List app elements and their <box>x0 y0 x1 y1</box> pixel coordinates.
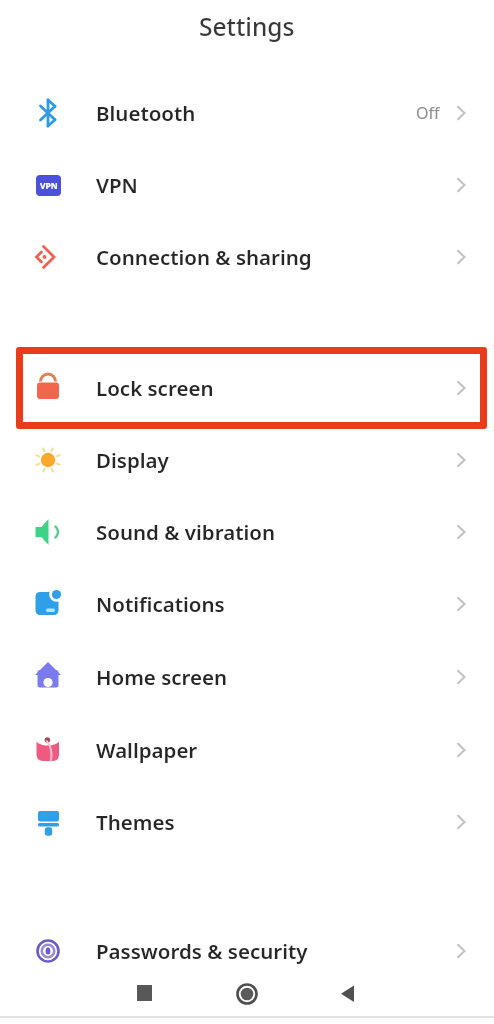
staticText: VPN <box>40 180 58 192</box>
button[interactable]: Display <box>0 424 494 496</box>
button[interactable]: Wallpaper <box>0 714 494 786</box>
button[interactable]: Sound & vibration <box>0 496 494 568</box>
button[interactable]: Bluetooth <box>0 77 494 149</box>
button[interactable]: Connection & sharing <box>0 221 494 293</box>
staticText: Settings <box>199 10 295 43</box>
button[interactable]: Passwords & security <box>0 915 494 987</box>
staticText: Notifications <box>96 590 225 618</box>
staticText: Off <box>416 102 440 124</box>
button[interactable]: Lock screen <box>0 352 494 424</box>
staticText: Themes <box>96 808 175 836</box>
button[interactable]: Home screen <box>0 641 494 713</box>
button[interactable]: Themes <box>0 786 494 858</box>
staticText: Sound & vibration <box>96 518 275 546</box>
staticText: Connection & sharing <box>96 243 312 271</box>
staticText: Lock screen <box>96 374 214 402</box>
button[interactable]: VPN <box>0 149 494 221</box>
staticText: Wallpaper <box>96 736 198 764</box>
staticText: Bluetooth <box>96 99 196 127</box>
staticText: Display <box>96 446 169 474</box>
button[interactable]: Notifications <box>0 568 494 640</box>
staticText: Home screen <box>96 663 228 691</box>
staticText: VPN <box>96 171 138 199</box>
staticText: Passwords & security <box>96 937 308 965</box>
